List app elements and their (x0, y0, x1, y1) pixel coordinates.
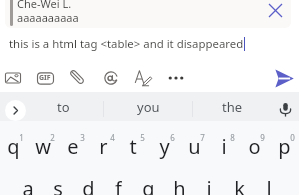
button[interactable]: Insert picture (1, 66, 25, 90)
button[interactable]: f (103, 175, 133, 195)
button[interactable]: Voice input (275, 99, 296, 120)
button[interactable]: Mention someone (99, 66, 123, 90)
staticText: this is a html tag <table> and it disapp… (9, 36, 244, 52)
button[interactable]: s (43, 175, 73, 195)
staticText: p (278, 133, 291, 159)
staticText: e (67, 133, 79, 159)
button[interactable]: o (239, 133, 269, 159)
button[interactable]: a (13, 175, 43, 195)
button[interactable]: q (0, 133, 28, 159)
button[interactable]: j (194, 175, 224, 195)
staticText: 2 (50, 132, 55, 143)
staticText: w (35, 133, 51, 159)
staticText: u (188, 133, 201, 159)
staticText: t (129, 133, 137, 159)
button[interactable]: k (224, 175, 254, 195)
staticText: f (115, 175, 122, 195)
button[interactable]: t (118, 133, 148, 159)
staticText: GIF (39, 73, 51, 83)
staticText: you (137, 98, 160, 116)
button[interactable]: Send (272, 66, 296, 90)
button[interactable]: g (133, 175, 163, 195)
staticText: k (234, 175, 245, 195)
staticText: s (53, 175, 63, 195)
staticText: d (82, 175, 95, 195)
button[interactable]: Insert GIF (33, 66, 57, 90)
staticText: g (142, 175, 155, 195)
button[interactable]: h (164, 175, 194, 195)
staticText: aaaaaaaaaa (17, 10, 79, 25)
staticText: the (222, 98, 243, 116)
staticText: j (206, 175, 212, 195)
button[interactable]: l (254, 175, 284, 195)
staticText: 4 (110, 132, 115, 143)
button[interactable] (5, 0, 291, 28)
button[interactable]: Attach file (65, 65, 89, 89)
staticText: o (248, 133, 261, 159)
staticText: h (173, 175, 186, 195)
staticText: to (57, 98, 70, 116)
staticText: r (99, 133, 108, 159)
button[interactable]: d (73, 175, 103, 195)
staticText: y (159, 133, 170, 159)
staticText: 6 (170, 132, 175, 143)
staticText: Che-Wei L. (17, 0, 72, 11)
staticText: 3 (80, 132, 85, 143)
button[interactable]: Expand toolbar (5, 100, 26, 121)
staticText: 9 (260, 132, 265, 143)
button[interactable]: e (58, 133, 88, 159)
button[interactable]: Format text (131, 66, 155, 90)
button[interactable]: w (28, 133, 58, 159)
staticText: i (221, 133, 227, 159)
staticText: 1 (19, 132, 24, 143)
staticText: a (22, 175, 34, 195)
button[interactable]: More options (164, 66, 188, 90)
button[interactable]: to (37, 95, 89, 118)
staticText: 0 (290, 132, 295, 143)
button[interactable]: p (269, 133, 299, 159)
button[interactable]: i (209, 133, 239, 159)
button[interactable]: the (206, 95, 258, 118)
button[interactable]: Dismiss reply (264, 0, 286, 21)
staticText: q (7, 133, 20, 159)
button[interactable]: y (149, 133, 179, 159)
button[interactable]: u (179, 133, 209, 159)
button[interactable]: r (88, 133, 118, 159)
staticText: 7 (200, 132, 205, 143)
staticText: 5 (140, 132, 145, 143)
button[interactable]: you (122, 95, 174, 118)
staticText: 8 (230, 132, 235, 143)
staticText: l (266, 175, 272, 195)
